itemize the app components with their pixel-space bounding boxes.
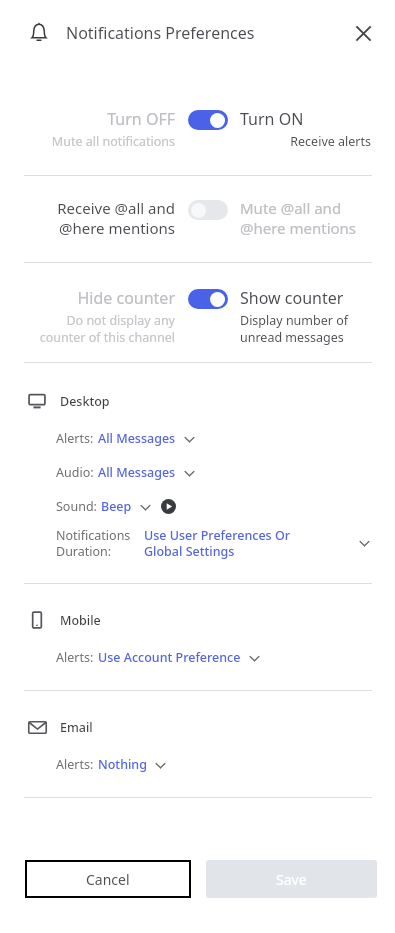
button[interactable]: All Messages	[98, 464, 195, 481]
staticText: All Messages	[98, 430, 176, 447]
staticText: All Messages	[98, 464, 176, 481]
staticText: Notifications Duration:	[56, 527, 144, 559]
staticText: Use User Preferences Or Global Settings	[144, 527, 358, 559]
button[interactable]: Use User Preferences Or Global Settings	[144, 527, 371, 559]
staticText: Desktop	[60, 393, 110, 410]
staticText: Display number of unread messages	[240, 312, 371, 345]
button[interactable]: Toggle on	[188, 110, 228, 130]
staticText: Turn ON	[240, 108, 371, 130]
staticText: Audio:	[56, 464, 94, 481]
staticText: Sound:	[56, 498, 97, 515]
staticText: Hide counter	[0, 287, 175, 309]
staticText: Mute @all and @here mentions	[240, 198, 371, 238]
button[interactable]: Toggle off	[188, 200, 228, 220]
staticText: Email	[60, 719, 93, 736]
button[interactable]: Cancel	[25, 860, 191, 898]
button[interactable]: Nothing	[98, 756, 166, 773]
staticText: Notifications Preferences	[66, 22, 255, 44]
staticText: Save	[276, 870, 307, 889]
staticText: Do not display any counter of this chann…	[0, 312, 175, 345]
staticText: Show counter	[240, 287, 371, 309]
staticText: Alerts:	[56, 756, 94, 773]
button[interactable]: Close	[345, 15, 381, 51]
staticText: Cancel	[86, 870, 130, 889]
staticText: Mute all notifications	[0, 133, 175, 150]
button[interactable]: Save	[206, 860, 377, 898]
button[interactable]: Play sound	[160, 498, 176, 514]
staticText: Use Account Preference	[98, 649, 241, 666]
staticText: Nothing	[98, 756, 147, 773]
staticText: Beep	[101, 498, 132, 515]
staticText: Alerts:	[56, 430, 94, 447]
button[interactable]: All Messages	[98, 430, 195, 447]
staticText: Alerts:	[56, 649, 94, 666]
button[interactable]: Use Account Preference	[98, 649, 260, 666]
staticText: Mobile	[60, 612, 101, 629]
button[interactable]: Beep	[101, 498, 151, 515]
button[interactable]: Toggle on	[188, 289, 228, 309]
staticText: Turn OFF	[0, 108, 175, 130]
staticText: Receive alerts	[240, 133, 371, 150]
button[interactable]: Notifications	[24, 18, 54, 48]
staticText: Receive @all and @here mentions	[0, 198, 175, 238]
